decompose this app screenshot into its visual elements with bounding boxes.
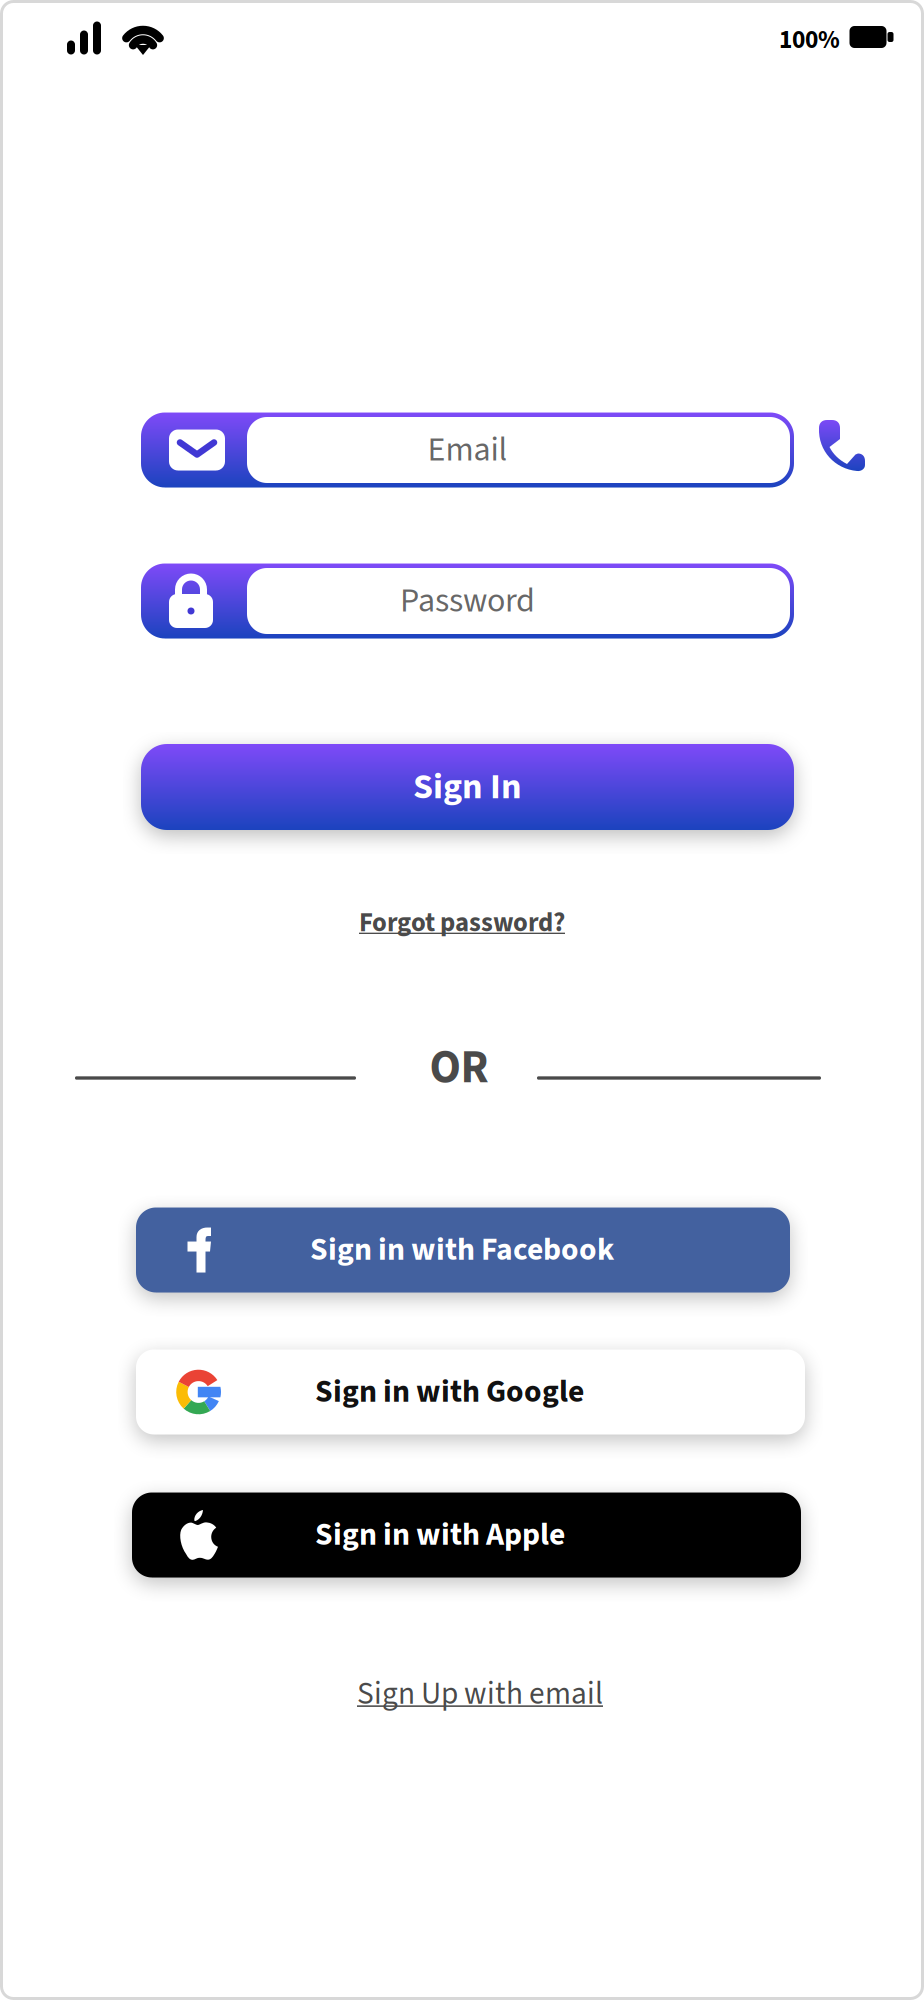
button[interactable]: Sign In — [141, 744, 794, 830]
button[interactable]: Sign in with Google — [136, 1349, 805, 1434]
staticText: Sign Up with email — [357, 1672, 603, 1716]
staticText: Sign in with Apple — [315, 1512, 565, 1557]
staticText: Forgot password? — [359, 904, 565, 942]
button[interactable]: Forgot password? — [351, 899, 573, 947]
button[interactable]: Sign in with Apple — [132, 1492, 801, 1577]
button[interactable]: Sign Up with email — [349, 1667, 611, 1721]
staticText: Sign In — [413, 761, 522, 813]
staticText: Password — [400, 577, 535, 625]
staticText: 100% — [779, 22, 840, 58]
staticText: Email — [427, 426, 507, 474]
button[interactable]: Sign in with Facebook — [136, 1207, 790, 1292]
button[interactable]: Sign in with phone — [814, 418, 868, 472]
staticText: Sign in with Facebook — [310, 1227, 614, 1272]
staticText: OR — [429, 1035, 488, 1101]
staticText: Sign in with Google — [315, 1369, 584, 1414]
